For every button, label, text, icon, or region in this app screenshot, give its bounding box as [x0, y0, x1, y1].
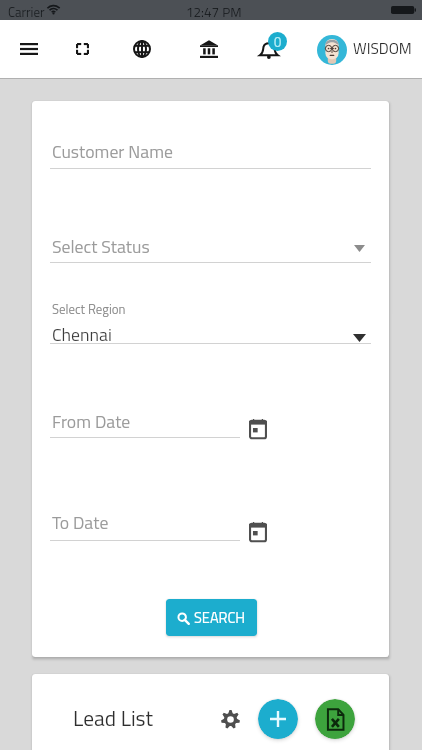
button[interactable]: From Date — [50, 402, 258, 444]
staticText: 12:47 PM — [186, 2, 242, 22]
staticText: To Date — [52, 509, 109, 536]
button[interactable]: Language — [127, 29, 157, 69]
staticText: SEARCH — [194, 607, 246, 629]
staticText: Carrier — [8, 2, 45, 22]
staticText: From Date — [52, 408, 131, 435]
staticText: Select Status — [52, 233, 150, 260]
staticText: Customer Name — [52, 138, 173, 165]
staticText: Select Region — [52, 299, 126, 319]
button[interactable]: Select Status — [32, 227, 389, 269]
button[interactable]: Accounts — [194, 29, 224, 69]
button[interactable]: Select Region — [32, 295, 389, 349]
button[interactable]: SEARCH — [166, 599, 257, 636]
button[interactable]: Profile — [317, 35, 347, 65]
button[interactable]: Customer Name — [32, 132, 389, 174]
button[interactable]: Notifications — [255, 29, 293, 61]
button[interactable]: Menu — [14, 29, 44, 69]
button[interactable]: Export to Excel — [315, 699, 355, 739]
button[interactable]: To Date — [50, 503, 258, 545]
staticText: 0 — [274, 32, 282, 51]
button[interactable]: Add lead — [258, 699, 298, 739]
button[interactable]: Settings — [215, 704, 245, 734]
button[interactable]: WISDOM — [353, 37, 412, 60]
button[interactable]: Fullscreen — [67, 29, 97, 69]
button[interactable]: Pick To Date — [243, 517, 273, 547]
staticText: Lead List — [73, 702, 154, 735]
button[interactable]: Pick From Date — [243, 414, 273, 444]
staticText: Chennai — [52, 321, 112, 348]
